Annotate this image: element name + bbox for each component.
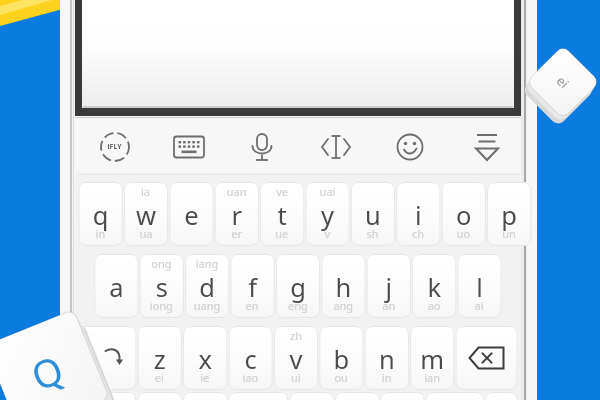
button[interactable]: iFly input method keyboard screenshot xyxy=(0,0,600,400)
